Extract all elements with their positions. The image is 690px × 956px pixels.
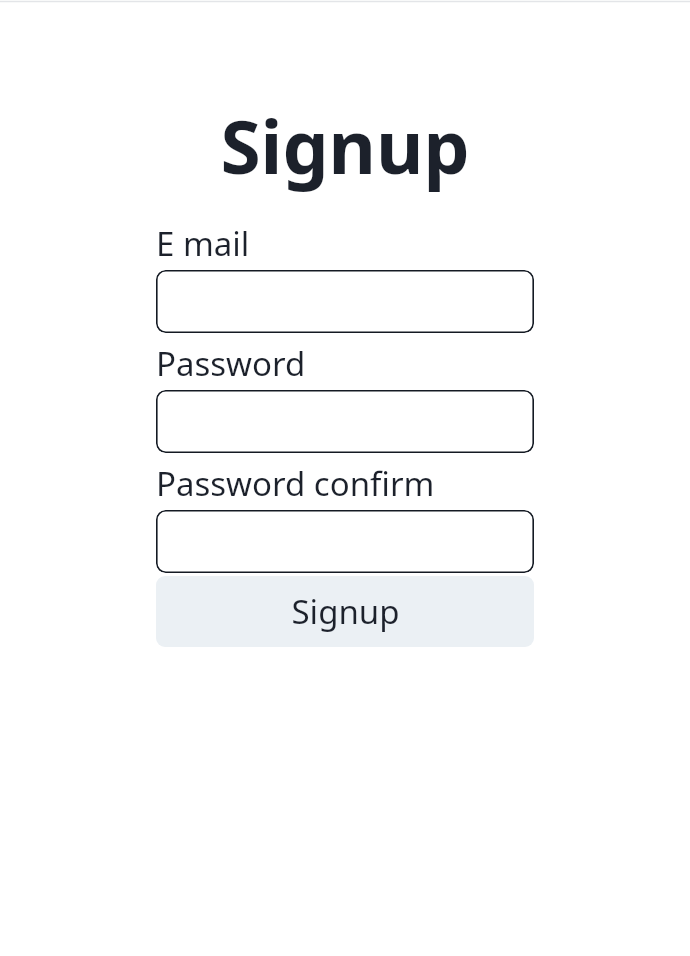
button[interactable]: Signup: [156, 576, 534, 647]
button[interactable]: [156, 510, 534, 573]
staticText: Signup: [291, 589, 400, 634]
button[interactable]: [156, 390, 534, 453]
staticText: Password confirm: [156, 461, 435, 506]
staticText: E mail: [156, 221, 250, 266]
staticText: Signup: [220, 96, 470, 195]
staticText: Password: [156, 341, 306, 386]
button[interactable]: [156, 270, 534, 333]
